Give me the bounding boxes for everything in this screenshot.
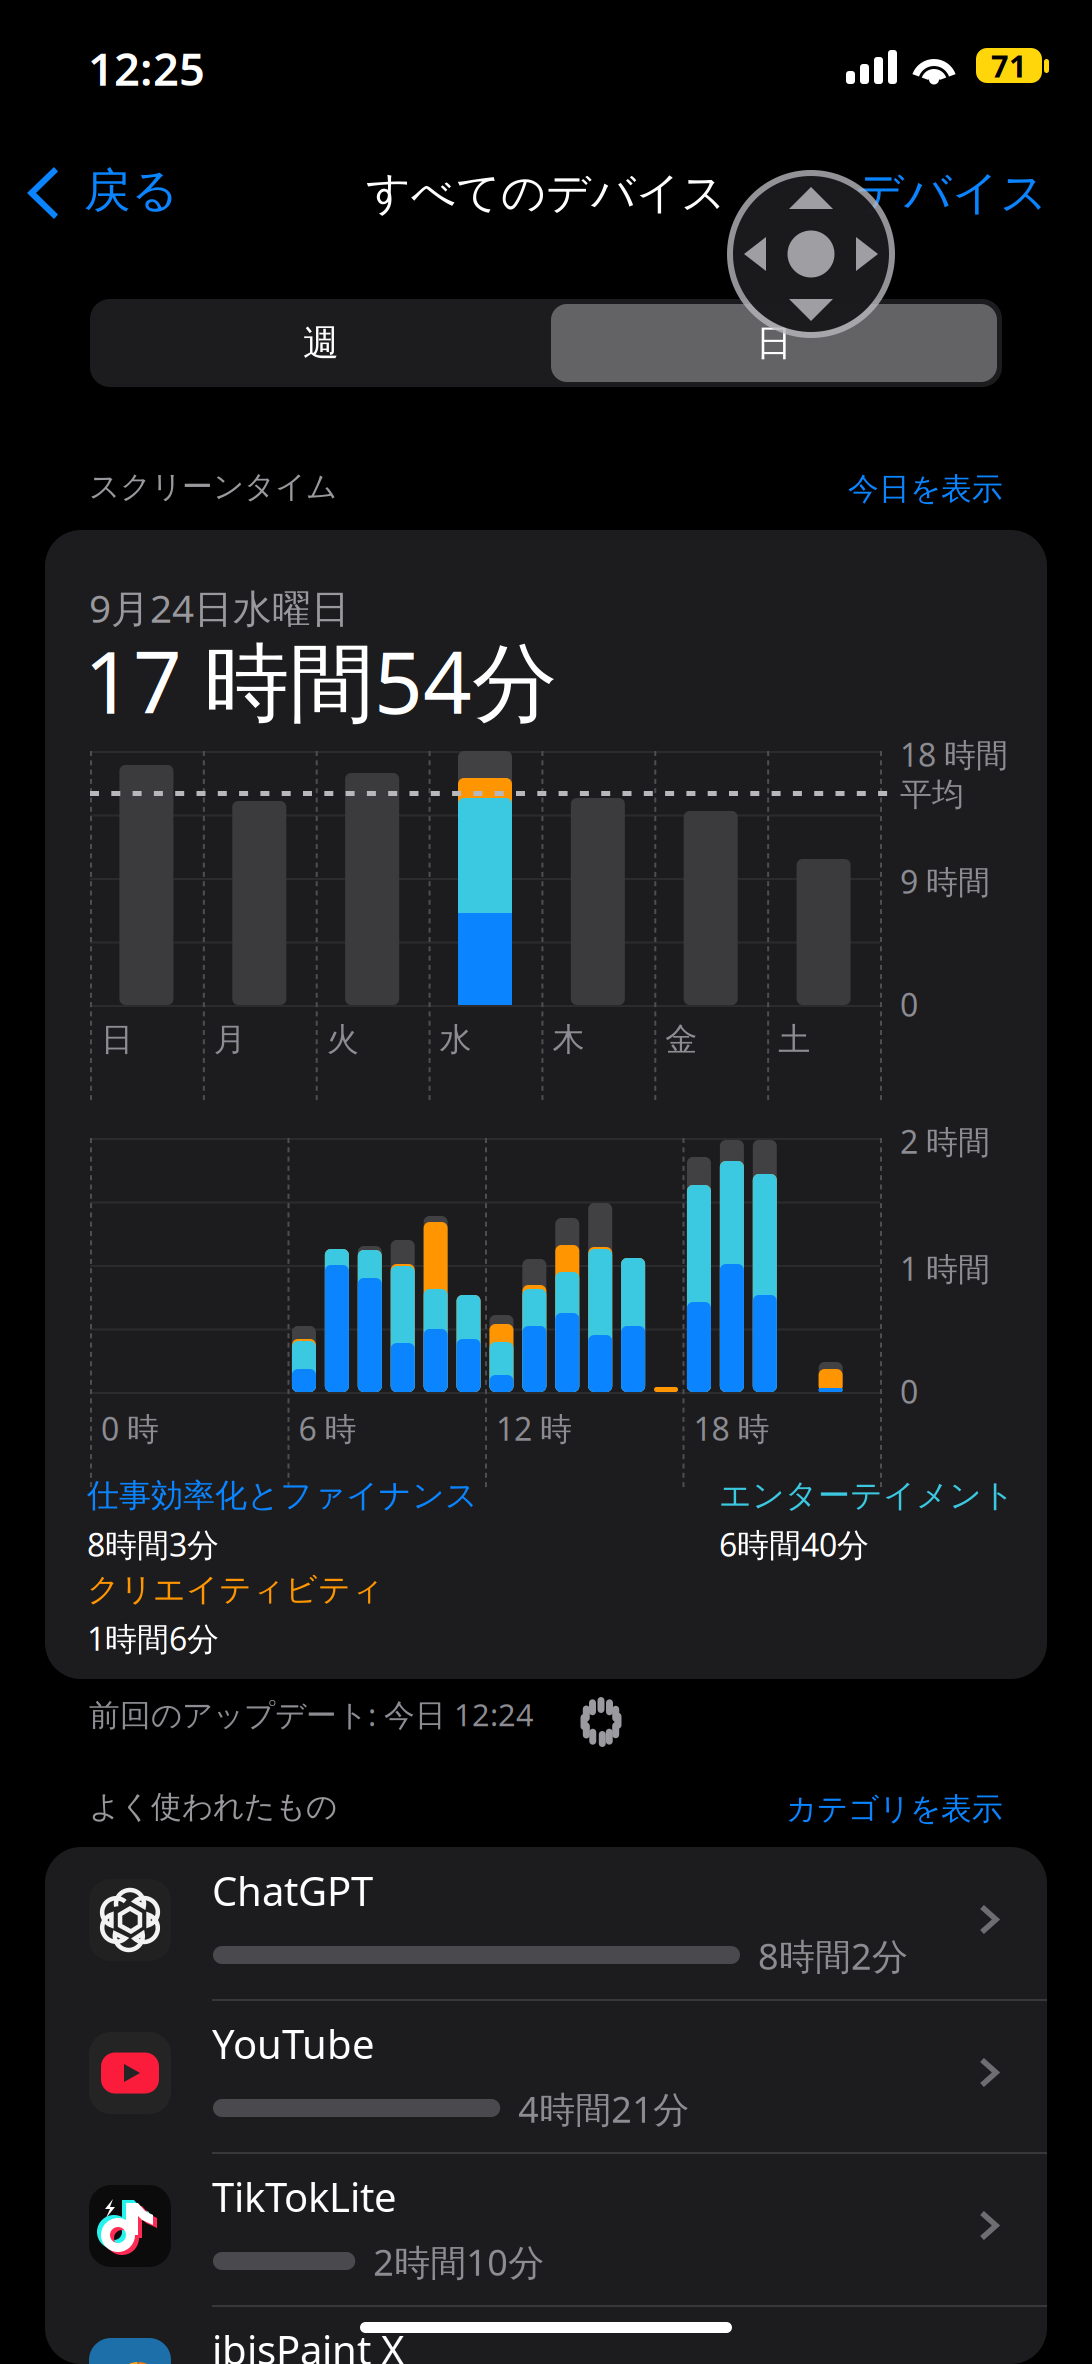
- staticText: ChatGPT: [212, 1864, 373, 1917]
- button[interactable]: 戻る: [0, 150, 210, 236]
- button[interactable]: YouTube: [45, 2000, 1047, 2153]
- staticText: 日: [101, 1020, 133, 1059]
- staticText: スクリーンタイム: [89, 468, 337, 506]
- staticText: 12:25: [88, 38, 205, 98]
- staticText: 6時間40分: [719, 1523, 869, 1565]
- staticText: 仕事効率化とファイナンス: [87, 1476, 478, 1515]
- staticText: 12 時: [496, 1407, 572, 1449]
- staticText: 平均: [900, 775, 964, 814]
- staticText: カテゴリを表示: [786, 1790, 1003, 1828]
- button[interactable]: TikTokLite: [45, 2153, 1047, 2306]
- staticText: 18 時: [693, 1407, 769, 1449]
- staticText: 9月24日水曜日: [89, 582, 350, 633]
- staticText: 71: [991, 45, 1027, 86]
- staticText: TikTokLite: [212, 2170, 397, 2223]
- staticText: 2 時間: [900, 1120, 990, 1162]
- staticText: 木: [552, 1020, 584, 1059]
- staticText: 9 時間: [900, 860, 990, 902]
- staticText: 6 時: [298, 1407, 356, 1449]
- button[interactable]: ChatGPT: [45, 1847, 1047, 2000]
- button[interactable]: AssistiveTouch: [727, 170, 895, 338]
- staticText: 今日を表示: [848, 470, 1003, 508]
- staticText: 4時間21分: [518, 2085, 689, 2133]
- button[interactable]: デバイス: [0, 150, 1048, 236]
- staticText: 1時間6分: [87, 1617, 219, 1659]
- staticText: 月: [214, 1020, 246, 1059]
- staticText: 水: [440, 1020, 472, 1059]
- staticText: 火: [327, 1020, 359, 1059]
- staticText: すべてのデバイス: [366, 166, 726, 220]
- staticText: 8時間3分: [87, 1523, 219, 1565]
- button[interactable]: ibisPaint X: [45, 2306, 1047, 2364]
- staticText: 17 時間54分: [84, 624, 557, 737]
- staticText: 1 時間: [900, 1247, 990, 1289]
- staticText: YouTube: [212, 2017, 375, 2070]
- staticText: 2時間10分: [373, 2238, 544, 2286]
- staticText: ibisPaint X: [212, 2323, 404, 2364]
- staticText: 18 時間: [900, 733, 1008, 775]
- staticText: 8時間2分: [758, 1932, 908, 1980]
- staticText: 戻る: [84, 162, 179, 219]
- staticText: 金: [665, 1020, 697, 1059]
- button[interactable]: カテゴリを表示: [0, 1788, 1003, 1830]
- button[interactable]: 今日を表示: [0, 468, 1003, 510]
- staticText: デバイス: [856, 164, 1048, 222]
- staticText: 週: [303, 321, 339, 365]
- staticText: 土: [778, 1020, 810, 1059]
- staticText: クリエイティビティ: [87, 1570, 384, 1609]
- staticText: 前回のアップデート: 今日 12:24: [89, 1694, 534, 1735]
- button[interactable]: 日: [551, 304, 997, 382]
- staticText: 0: [900, 1370, 918, 1412]
- staticText: 0: [900, 983, 918, 1025]
- staticText: 日: [756, 321, 792, 365]
- staticText: よく使われたもの: [89, 1788, 337, 1826]
- staticText: 0 時: [101, 1407, 159, 1449]
- button[interactable]: 週: [95, 304, 547, 382]
- staticText: エンターテイメント: [719, 1476, 1015, 1515]
